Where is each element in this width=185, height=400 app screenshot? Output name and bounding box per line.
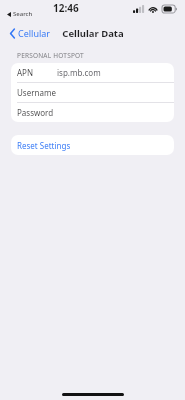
button[interactable]: Cellular xyxy=(8,24,53,42)
button[interactable]: Password xyxy=(11,103,174,122)
button[interactable]: APN xyxy=(11,63,174,83)
staticText: Password xyxy=(17,107,54,118)
staticText: Reset Settings xyxy=(17,140,71,151)
staticText: APN xyxy=(17,67,34,78)
staticText: PERSONAL HOTSPOT xyxy=(17,51,84,60)
button[interactable]: Reset Settings xyxy=(11,135,174,155)
staticText: Cellular Data xyxy=(62,27,124,40)
button[interactable]: Username xyxy=(11,83,174,103)
staticText: Search xyxy=(13,10,33,18)
button[interactable]: Search xyxy=(7,10,33,18)
staticText: Username xyxy=(17,87,56,98)
staticText: Cellular xyxy=(18,27,51,39)
staticText: 12:46 xyxy=(53,1,79,15)
staticText: isp.mb.com xyxy=(57,67,101,78)
